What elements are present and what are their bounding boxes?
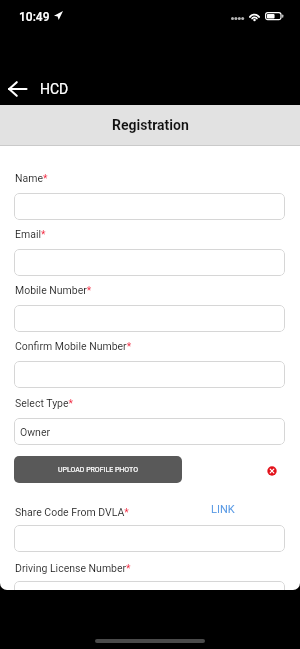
button[interactable] bbox=[14, 249, 285, 276]
button[interactable] bbox=[14, 361, 285, 388]
staticText: Mobile Number* bbox=[15, 284, 92, 296]
staticText: Confirm Mobile Number* bbox=[15, 340, 132, 352]
button[interactable] bbox=[14, 305, 285, 332]
staticText: HCD bbox=[40, 81, 69, 97]
staticText: Name* bbox=[15, 172, 48, 184]
button[interactable] bbox=[14, 525, 285, 552]
button[interactable]: Back bbox=[4, 76, 30, 102]
button[interactable]: Remove photo bbox=[262, 461, 281, 480]
button[interactable] bbox=[14, 193, 285, 220]
staticText: Driving License Number* bbox=[15, 562, 131, 574]
staticText: Share Code From DVLA* bbox=[15, 506, 129, 518]
staticText: Registration bbox=[112, 117, 189, 133]
button[interactable]: Owner bbox=[14, 418, 285, 445]
staticText: Email* bbox=[15, 228, 46, 240]
button[interactable] bbox=[14, 581, 285, 590]
staticText: 10:49 bbox=[19, 10, 50, 24]
button[interactable]: LINK bbox=[211, 503, 235, 516]
staticText: UPLOAD PROFILE PHOTO bbox=[58, 466, 138, 474]
staticText: Select Type* bbox=[15, 397, 74, 409]
staticText: Owner bbox=[20, 426, 51, 438]
staticText: LINK bbox=[211, 503, 235, 516]
button[interactable]: UPLOAD PROFILE PHOTO bbox=[14, 456, 182, 483]
